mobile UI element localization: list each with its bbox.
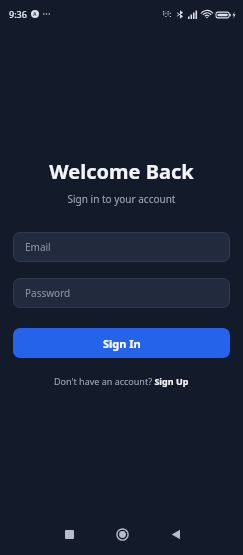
staticText: Welcome Back <box>0 158 243 185</box>
button[interactable]: Back <box>155 514 195 554</box>
staticText: Don't have an account? Sign Up <box>54 375 189 387</box>
button[interactable]: Email <box>13 232 230 262</box>
staticText: Password <box>25 286 71 300</box>
button[interactable]: Sign In <box>13 328 230 358</box>
button[interactable]: Home <box>102 514 142 554</box>
staticText: Sign In <box>103 336 141 351</box>
button[interactable]: Recents <box>49 514 89 554</box>
staticText: Sign in to your account <box>0 192 243 206</box>
button[interactable]: Don't have an account? Sign Up <box>0 375 243 387</box>
staticText: Email <box>25 240 51 254</box>
staticText: 9:36 <box>9 8 27 20</box>
staticText: A <box>33 11 37 18</box>
button[interactable]: Password <box>13 278 230 308</box>
